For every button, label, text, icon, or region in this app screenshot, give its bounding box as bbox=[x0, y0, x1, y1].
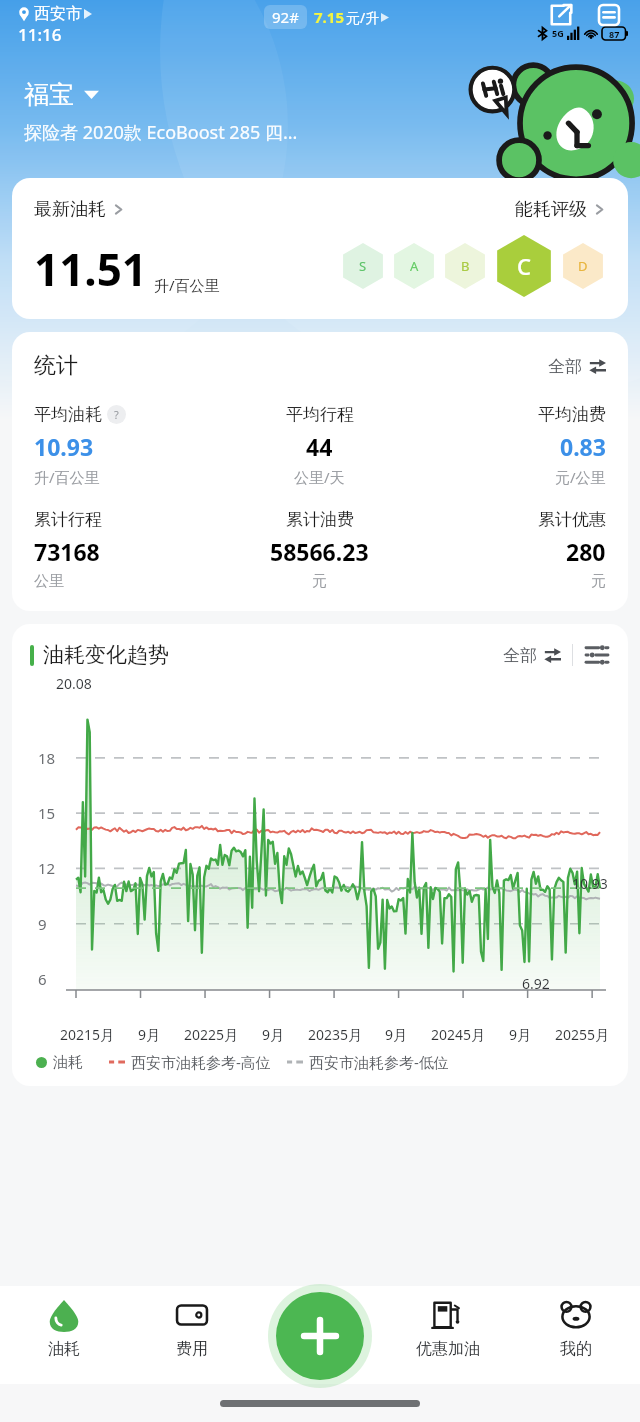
staticText: 10.93 bbox=[572, 874, 608, 893]
button[interactable]: 记一笔 bbox=[276, 1292, 364, 1380]
staticText: 18 bbox=[38, 748, 56, 768]
staticText: 元/公里 bbox=[555, 467, 606, 487]
staticText: 累计行程 bbox=[34, 509, 102, 530]
staticText: 优惠加油 bbox=[416, 1339, 480, 1359]
staticText: 44 bbox=[306, 431, 333, 462]
staticText: 统计 bbox=[34, 352, 78, 380]
staticText: 11:16 bbox=[18, 23, 62, 46]
staticText: 我的 bbox=[560, 1339, 592, 1359]
staticText: 9 bbox=[38, 914, 47, 934]
staticText: 92# bbox=[272, 7, 299, 27]
staticText: 平均油费 bbox=[538, 404, 606, 425]
staticText: 20245月 bbox=[431, 1025, 486, 1044]
staticText: 20225月 bbox=[184, 1025, 239, 1044]
staticText: 升/百公里 bbox=[154, 275, 220, 295]
staticText: 20215月 bbox=[60, 1025, 115, 1044]
staticText: 元 bbox=[591, 572, 606, 591]
button[interactable]: C bbox=[493, 235, 555, 297]
staticText: 73168 bbox=[34, 536, 100, 567]
button[interactable]: 记一笔 bbox=[296, 1336, 344, 1356]
staticText: 油耗 bbox=[48, 1339, 80, 1359]
button[interactable]: 西安市 bbox=[16, 4, 92, 24]
staticText: 元 bbox=[312, 572, 327, 591]
staticText: 20235月 bbox=[308, 1025, 363, 1044]
button[interactable]: 累计油费 bbox=[224, 509, 415, 591]
staticText: 0.83 bbox=[560, 431, 606, 462]
staticText: 油耗变化趋势 bbox=[43, 642, 169, 668]
button[interactable]: 平均油耗 bbox=[34, 404, 224, 487]
button[interactable]: 全部 bbox=[503, 645, 561, 666]
button[interactable]: 分享 bbox=[546, 0, 576, 30]
button[interactable]: 累计优惠 bbox=[415, 509, 606, 591]
staticText: 10.93 bbox=[34, 431, 94, 462]
button[interactable]: 最新油耗 bbox=[34, 198, 125, 221]
button[interactable]: 福宝 bbox=[24, 79, 99, 110]
staticText: 20255月 bbox=[555, 1025, 610, 1044]
button[interactable]: 平均行程 bbox=[224, 404, 415, 487]
button[interactable]: 全部 bbox=[548, 356, 606, 377]
staticText: 9月 bbox=[385, 1025, 408, 1044]
button[interactable]: A bbox=[391, 243, 437, 289]
button[interactable]: 筛选 bbox=[584, 642, 610, 668]
button[interactable]: 能耗评级 bbox=[515, 198, 606, 221]
staticText: 探险者 2020款 EcoBoost 285 四... bbox=[24, 120, 298, 145]
button[interactable]: 累计行程 bbox=[34, 509, 224, 591]
staticText: 元/升 bbox=[346, 8, 380, 27]
button[interactable]: 费用 bbox=[128, 1294, 256, 1359]
staticText: 280 bbox=[566, 536, 606, 567]
button[interactable]: D bbox=[560, 243, 606, 289]
staticText: 9月 bbox=[262, 1025, 285, 1044]
staticText: 费用 bbox=[176, 1339, 208, 1359]
staticText: 公里 bbox=[34, 572, 64, 591]
staticText: 全部 bbox=[503, 645, 537, 666]
staticText: 7.15 bbox=[314, 7, 344, 27]
staticText: 58566.23 bbox=[270, 536, 369, 567]
staticText: 油耗 bbox=[53, 1053, 83, 1072]
staticText: ? bbox=[114, 407, 119, 422]
staticText: 能耗评级 bbox=[515, 198, 587, 221]
button[interactable]: 92# bbox=[264, 5, 389, 29]
staticText: 15 bbox=[38, 803, 56, 823]
staticText: 最新油耗 bbox=[34, 198, 106, 221]
staticText: S bbox=[359, 257, 367, 275]
staticText: 87 bbox=[609, 28, 620, 40]
staticText: 9月 bbox=[138, 1025, 161, 1044]
staticText: 升/百公里 bbox=[34, 467, 100, 487]
button[interactable]: 平均油费 bbox=[415, 404, 606, 487]
staticText: 累计油费 bbox=[286, 509, 354, 530]
staticText: 西安市油耗参考-高位 bbox=[131, 1052, 271, 1072]
staticText: C bbox=[517, 251, 531, 281]
staticText: 西安市 bbox=[34, 4, 82, 24]
button[interactable]: 我的 bbox=[512, 1294, 640, 1359]
staticText: 9月 bbox=[509, 1025, 532, 1044]
button[interactable]: 油耗 bbox=[0, 1294, 128, 1359]
staticText: 西安市油耗参考-低位 bbox=[309, 1052, 449, 1072]
staticText: 福宝 bbox=[24, 79, 74, 110]
staticText: 11.51 bbox=[34, 239, 148, 299]
staticText: 6 bbox=[38, 969, 47, 989]
staticText: 6.92 bbox=[522, 974, 550, 993]
button[interactable]: 详单 bbox=[594, 0, 624, 30]
staticText: 累计优惠 bbox=[538, 509, 606, 530]
button[interactable]: 优惠加油 bbox=[384, 1294, 512, 1359]
staticText: 全部 bbox=[548, 356, 582, 377]
staticText: 公里/天 bbox=[294, 467, 345, 487]
staticText: 12 bbox=[38, 858, 56, 878]
staticText: 20.08 bbox=[56, 674, 92, 693]
staticText: 平均油耗 bbox=[34, 404, 102, 425]
staticText: B bbox=[461, 257, 470, 275]
staticText: A bbox=[410, 257, 419, 275]
staticText: 平均行程 bbox=[286, 404, 354, 425]
staticText: D bbox=[578, 257, 588, 275]
button[interactable]: S bbox=[340, 243, 386, 289]
staticText: 5G bbox=[552, 27, 564, 39]
button[interactable]: B bbox=[442, 243, 488, 289]
